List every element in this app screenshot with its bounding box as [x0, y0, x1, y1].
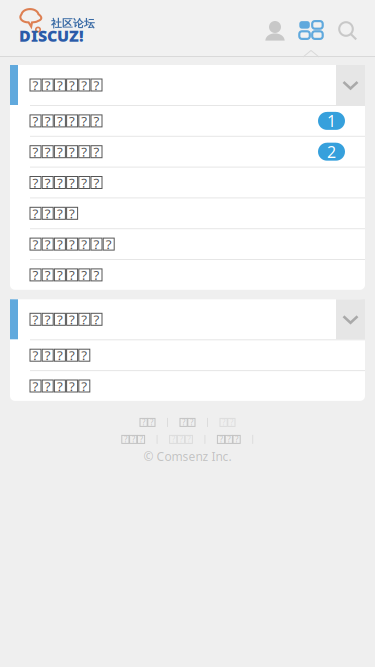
staticText: ? — [172, 434, 175, 445]
staticText: ? — [32, 76, 38, 94]
button[interactable]: ? — [140, 415, 155, 429]
button[interactable]: ? — [10, 260, 365, 290]
button[interactable]: ? — [10, 371, 365, 401]
staticText: ? — [69, 266, 75, 284]
staticText: ? — [45, 143, 51, 160]
staticText: ? — [81, 235, 87, 253]
staticText: ? — [57, 346, 63, 364]
staticText: ? — [182, 417, 185, 428]
staticText: ? — [179, 434, 182, 445]
button[interactable]: ? — [217, 432, 240, 446]
staticText: ? — [93, 174, 99, 191]
staticText: ? — [69, 235, 75, 253]
staticText: ? — [139, 434, 142, 445]
staticText: 社区论坛 — [51, 17, 95, 30]
staticText: ? — [69, 143, 75, 160]
staticText: ? — [57, 377, 63, 395]
button[interactable]: ? — [220, 415, 235, 429]
staticText: ? — [106, 235, 112, 253]
staticText: ? — [32, 310, 38, 328]
button[interactable]: ? — [180, 415, 195, 429]
staticText: ? — [69, 76, 75, 94]
button[interactable]: ? — [170, 432, 192, 446]
staticText: ? — [81, 346, 87, 364]
button[interactable]: ? — [10, 137, 365, 167]
staticText: © Comsenz Inc. — [143, 448, 231, 464]
staticText: ? — [57, 266, 63, 284]
staticText: ? — [57, 235, 63, 253]
staticText: ? — [45, 346, 51, 364]
button[interactable]: ? — [10, 106, 365, 136]
button[interactable]: Account — [257, 0, 293, 56]
staticText: ? — [93, 266, 99, 284]
staticText: ? — [69, 310, 75, 328]
staticText: ? — [93, 310, 99, 328]
staticText: ? — [219, 434, 222, 445]
staticText: ? — [45, 377, 51, 395]
staticText: ? — [69, 346, 75, 364]
staticText: ? — [81, 310, 87, 328]
staticText: ? — [187, 434, 190, 445]
staticText: ? — [32, 266, 38, 284]
staticText: ? — [32, 235, 38, 253]
button[interactable]: ? — [10, 229, 365, 259]
staticText: ? — [32, 112, 38, 130]
staticText: DISCUZ! — [19, 25, 84, 46]
staticText: ? — [69, 204, 75, 222]
button[interactable]: ? — [10, 299, 365, 339]
button[interactable]: ? — [122, 432, 145, 446]
staticText: ? — [93, 235, 99, 253]
button[interactable]: ? — [10, 65, 365, 105]
staticText: ? — [32, 204, 38, 222]
staticText: ? — [81, 143, 87, 160]
staticText: ? — [81, 112, 87, 130]
staticText: ? — [150, 417, 153, 428]
staticText: ? — [45, 204, 51, 222]
staticText: ? — [57, 310, 63, 328]
button[interactable]: ? — [10, 168, 365, 197]
staticText: ? — [93, 112, 99, 130]
staticText: ? — [132, 434, 135, 445]
staticText: ? — [93, 76, 99, 94]
staticText: ? — [57, 112, 63, 130]
staticText: ? — [45, 76, 51, 94]
staticText: ? — [81, 174, 87, 191]
staticText: ? — [235, 434, 238, 445]
button[interactable]: ? — [10, 340, 365, 370]
staticText: ? — [32, 174, 38, 191]
staticText: ? — [142, 417, 145, 428]
staticText: ? — [69, 377, 75, 395]
staticText: ? — [32, 346, 38, 364]
staticText: ? — [32, 377, 38, 395]
staticText: ? — [45, 174, 51, 191]
button[interactable]: Sections — [293, 0, 329, 56]
staticText: 1 — [327, 110, 336, 131]
staticText: ? — [69, 112, 75, 130]
staticText: ? — [57, 76, 63, 94]
staticText: ? — [81, 377, 87, 395]
staticText: ? — [93, 143, 99, 160]
staticText: ? — [57, 204, 63, 222]
staticText: ? — [81, 76, 87, 94]
button[interactable]: Search — [329, 0, 365, 56]
staticText: ? — [57, 174, 63, 191]
button[interactable]: ? — [10, 198, 365, 228]
staticText: ? — [222, 417, 225, 428]
staticText: ? — [32, 143, 38, 160]
staticText: ? — [227, 434, 230, 445]
staticText: ? — [230, 417, 233, 428]
staticText: 2 — [327, 141, 336, 162]
staticText: ? — [69, 174, 75, 191]
staticText: ? — [124, 434, 127, 445]
staticText: ? — [45, 310, 51, 328]
staticText: ? — [57, 143, 63, 160]
staticText: ? — [81, 266, 87, 284]
staticText: ? — [45, 235, 51, 253]
staticText: ? — [190, 417, 193, 428]
staticText: ? — [45, 112, 51, 130]
staticText: ? — [45, 266, 51, 284]
